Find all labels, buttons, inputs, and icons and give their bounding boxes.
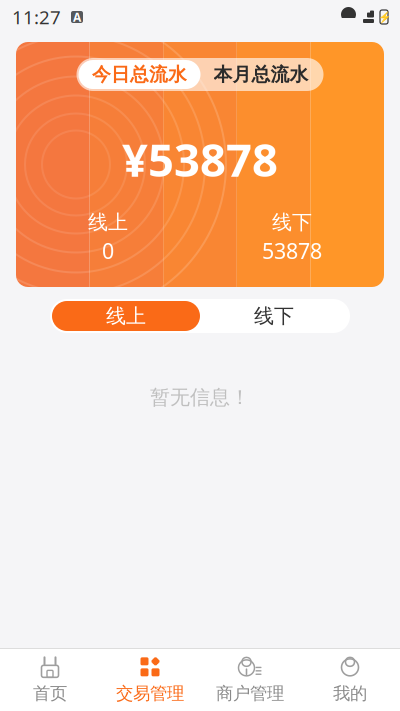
staticText: 交易管理 — [116, 683, 184, 704]
button[interactable]: 商户管理 — [200, 649, 300, 711]
button[interactable]: 线下 — [200, 301, 348, 331]
staticText: 今日总流水 — [92, 63, 187, 86]
staticText: 11:27 — [12, 5, 61, 29]
staticText: ¥53878 — [122, 129, 278, 189]
staticText: ⚡ — [377, 11, 390, 23]
button[interactable]: 我的 — [300, 649, 400, 711]
staticText: A — [73, 9, 81, 25]
staticText: 线下 — [254, 304, 294, 328]
staticText: 首页 — [33, 683, 67, 704]
staticText: 商户管理 — [216, 683, 284, 704]
staticText: 0 — [102, 237, 114, 265]
button[interactable]: 本月总流水 — [200, 60, 321, 89]
staticText: 线上 — [106, 304, 146, 328]
staticText: 线下 — [272, 210, 312, 235]
staticText: 暂无信息！ — [150, 385, 250, 410]
button[interactable]: 今日总流水 — [78, 60, 200, 89]
button[interactable]: 交易管理 — [100, 649, 200, 711]
staticText: 线上 — [88, 210, 128, 235]
staticText: 我的 — [333, 683, 367, 704]
staticText: 53878 — [262, 237, 322, 265]
button[interactable]: 线上 — [52, 301, 200, 331]
staticText: 本月总流水 — [213, 63, 308, 86]
button[interactable]: 首页 — [0, 649, 100, 711]
